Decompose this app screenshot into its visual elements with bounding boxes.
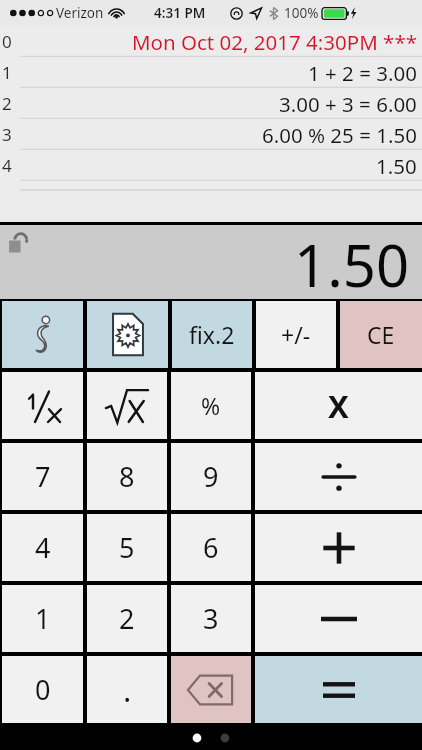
button[interactable]: 9	[171, 443, 251, 510]
button[interactable]: 4	[0, 150, 422, 181]
button[interactable]: Settings	[87, 301, 168, 368]
button[interactable]: 0	[2, 656, 83, 723]
staticText: 4:31 PM	[154, 4, 206, 22]
button[interactable]: 3	[0, 119, 422, 150]
staticText: 3.00 + 3 = 6.00	[279, 90, 417, 118]
staticText: %	[201, 390, 221, 421]
staticText: 1 + 2 = 3.00	[308, 59, 417, 87]
button[interactable]: CE	[340, 301, 422, 368]
button[interactable]: 1	[2, 585, 83, 652]
button[interactable]: Lock result	[0, 225, 422, 299]
staticText: 5	[119, 529, 135, 566]
button[interactable]: 5	[87, 514, 167, 581]
staticText: 1.50	[376, 152, 417, 180]
button[interactable]: 2	[0, 88, 422, 119]
button[interactable]: 8	[87, 443, 167, 510]
staticText: 0	[35, 671, 51, 708]
staticText: 1	[35, 600, 51, 637]
button[interactable]: 4	[2, 514, 83, 581]
staticText: 3	[203, 600, 219, 637]
button[interactable]: 2	[87, 585, 167, 652]
button[interactable]: Backspace	[171, 656, 251, 723]
staticText: 0	[2, 30, 12, 53]
staticText: 4	[2, 154, 12, 177]
button[interactable]: .	[87, 656, 167, 723]
staticText: Verizon	[56, 4, 104, 22]
button[interactable]: fix.2	[172, 301, 252, 368]
staticText: 2	[2, 92, 12, 115]
staticText: 6.00 % 25 = 1.50	[262, 121, 417, 149]
button[interactable]: %	[171, 372, 251, 439]
button[interactable]: Divide	[255, 443, 422, 510]
staticText: CE	[367, 319, 395, 350]
staticText: +/-	[281, 319, 311, 350]
button[interactable]: 7	[2, 443, 83, 510]
staticText: 6	[203, 529, 219, 566]
button[interactable]: 3	[171, 585, 251, 652]
staticText: 3	[2, 123, 12, 146]
staticText: Mon Oct 02, 2017 4:30PM ***	[132, 28, 417, 56]
button[interactable]: Lock result	[8, 229, 30, 254]
button[interactable]: 1	[0, 57, 422, 88]
button[interactable]: Reciprocal	[2, 372, 83, 439]
staticText: 2	[119, 600, 135, 637]
button[interactable]: Info	[2, 301, 83, 368]
staticText: 8	[119, 458, 135, 495]
staticText: 9	[203, 458, 219, 495]
staticText: .	[123, 669, 132, 711]
staticText: 1.50	[294, 225, 410, 296]
staticText: 4	[35, 529, 51, 566]
staticText: fix.2	[189, 319, 235, 350]
button[interactable]: Plus	[255, 514, 422, 581]
button[interactable]: 6	[171, 514, 251, 581]
staticText: X	[328, 385, 349, 427]
button[interactable]: Square root	[87, 372, 167, 439]
staticText: 7	[35, 458, 51, 495]
button[interactable]: 0	[0, 26, 422, 57]
staticText: 100%	[284, 4, 319, 22]
button[interactable]: Equals	[255, 656, 422, 723]
staticText: 1	[2, 61, 12, 84]
button[interactable]: X	[255, 372, 422, 439]
button[interactable]: +/-	[256, 301, 336, 368]
button[interactable]: Minus	[255, 585, 422, 652]
